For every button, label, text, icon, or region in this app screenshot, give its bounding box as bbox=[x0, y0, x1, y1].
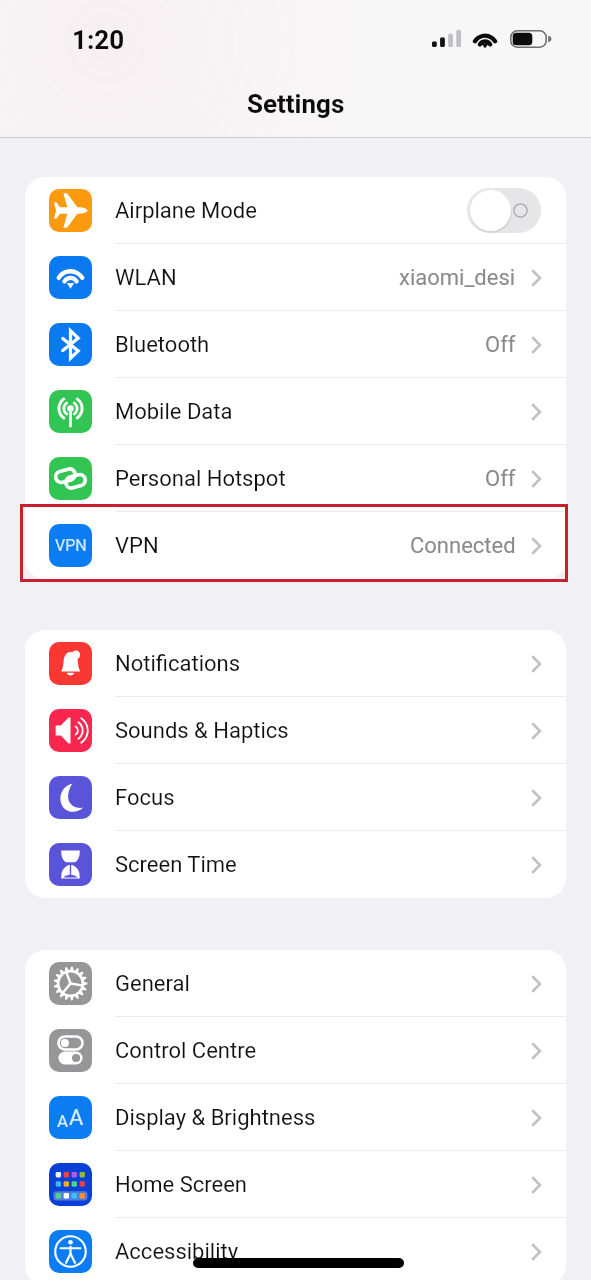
button[interactable]: Mobile Data bbox=[25, 378, 566, 445]
staticText: Airplane Mode bbox=[115, 198, 467, 224]
staticText: 1:20 bbox=[72, 25, 125, 55]
staticText: Screen Time bbox=[115, 852, 532, 878]
staticText: VPN bbox=[115, 533, 410, 559]
staticText: WLAN bbox=[115, 265, 399, 291]
staticText: A bbox=[57, 1111, 69, 1131]
staticText: Notifications bbox=[115, 651, 532, 677]
button[interactable]: Home Screen bbox=[25, 1151, 566, 1218]
button[interactable]: Control Centre bbox=[25, 1017, 566, 1084]
button[interactable]: Airplane Mode bbox=[25, 177, 566, 244]
button[interactable]: Focus bbox=[25, 764, 566, 831]
button[interactable]: Bluetooth bbox=[25, 311, 566, 378]
staticText: Connected bbox=[410, 533, 516, 559]
other: Battery bbox=[510, 30, 551, 48]
staticText: Accessibility bbox=[115, 1239, 532, 1265]
staticText: Control Centre bbox=[115, 1038, 532, 1064]
staticText: Home Screen bbox=[115, 1172, 532, 1198]
button[interactable]: Screen Time bbox=[25, 831, 566, 898]
other: Wi-Fi connected bbox=[472, 29, 498, 48]
staticText: Off bbox=[485, 332, 516, 358]
staticText: Off bbox=[485, 466, 516, 492]
button[interactable]: VPN bbox=[25, 512, 566, 579]
staticText: xiaomi_desi bbox=[399, 265, 516, 291]
button[interactable]: Sounds & Haptics bbox=[25, 697, 566, 764]
staticText: A bbox=[69, 1105, 84, 1131]
button[interactable]: WLAN bbox=[25, 244, 566, 311]
button[interactable]: Notifications bbox=[25, 630, 566, 697]
staticText: VPN bbox=[55, 536, 87, 555]
button[interactable]: Airplane Mode toggle, off bbox=[467, 188, 541, 233]
staticText: General bbox=[115, 971, 532, 997]
staticText: Mobile Data bbox=[115, 399, 532, 425]
button[interactable]: General bbox=[25, 950, 566, 1017]
staticText: Focus bbox=[115, 785, 532, 811]
staticText: Display & Brightness bbox=[115, 1105, 532, 1131]
staticText: Bluetooth bbox=[115, 332, 485, 358]
staticText: Personal Hotspot bbox=[115, 466, 485, 492]
button[interactable]: Accessibility bbox=[25, 1218, 566, 1280]
button[interactable]: A bbox=[25, 1084, 566, 1151]
staticText: Sounds & Haptics bbox=[115, 718, 532, 744]
button[interactable]: Personal Hotspot bbox=[25, 445, 566, 512]
staticText: Settings bbox=[247, 89, 345, 119]
other: Cellular signal strength bbox=[432, 30, 461, 47]
